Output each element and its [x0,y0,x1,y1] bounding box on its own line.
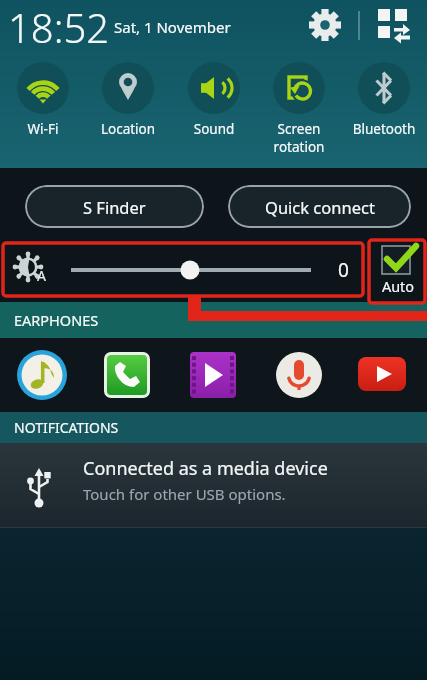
staticText: 18:52 [8,0,110,54]
button[interactable] [302,2,348,48]
staticText: Quick connect [265,196,375,218]
button[interactable] [187,349,239,401]
button[interactable]: A [0,242,365,296]
staticText: EARPHONES [14,310,99,330]
button[interactable] [358,62,410,114]
button[interactable] [188,62,240,114]
button[interactable]: Auto [370,242,426,300]
staticText: S Finder [83,196,146,218]
staticText: Sound [172,120,256,138]
button[interactable] [101,349,153,401]
staticText: NOTIFICATIONS [14,418,119,437]
button[interactable]: S Finder [25,185,204,228]
button[interactable] [102,62,154,114]
button[interactable]: Connected as a media device [0,443,427,527]
staticText: Auto [377,276,419,296]
staticText: Touch for other USB options. [83,484,286,504]
staticText: Wi-Fi [1,120,85,138]
staticText: Sat, 1 November [114,17,231,37]
button[interactable] [273,349,325,401]
button[interactable] [16,349,68,401]
button[interactable]: Quick connect [228,185,411,228]
staticText: Bluetooth [342,120,426,138]
staticText: A [37,266,46,285]
staticText: Location [86,120,170,138]
button[interactable] [356,349,408,401]
staticText: Screen rotation [257,120,341,156]
button[interactable] [370,2,416,48]
staticText: 0 [338,257,349,283]
button[interactable] [273,62,325,114]
button[interactable] [17,62,69,114]
staticText: Connected as a media device [83,456,328,481]
